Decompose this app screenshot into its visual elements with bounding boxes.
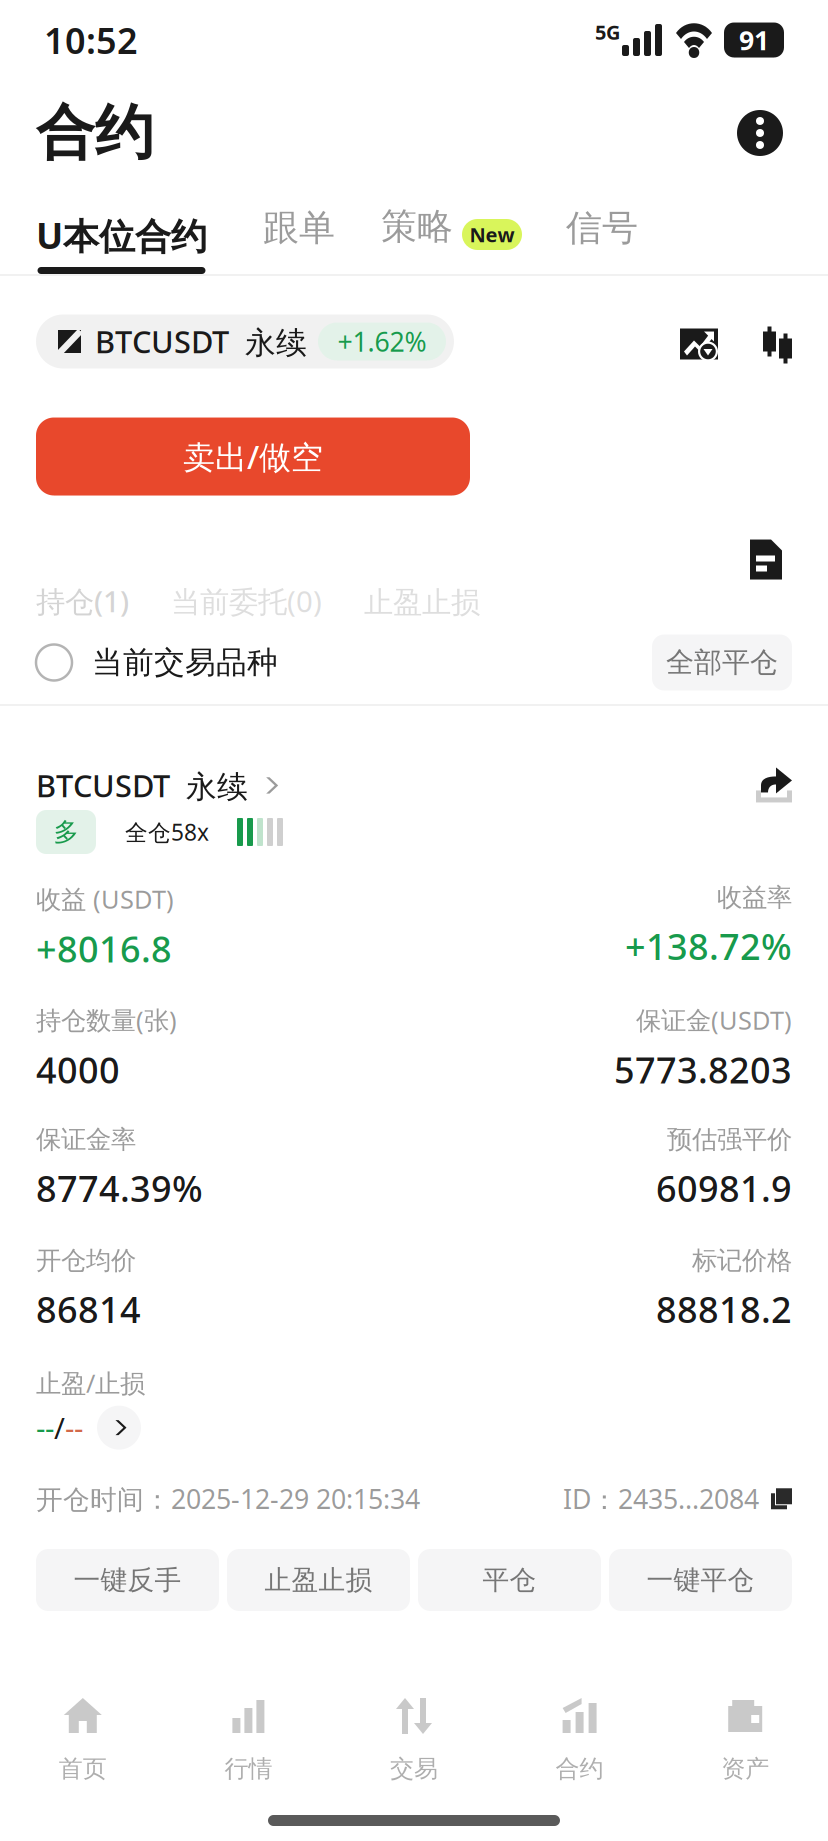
button[interactable]: 交易 xyxy=(331,1696,497,1808)
staticText: 止盈止损 xyxy=(364,584,480,620)
button[interactable]: 行情 xyxy=(166,1696,331,1808)
staticText: 平仓 xyxy=(482,1564,536,1596)
staticText: 跟单 xyxy=(263,206,335,250)
staticText: BTCUSDT 永续 xyxy=(36,765,248,806)
button[interactable]: 全部平仓 xyxy=(652,634,792,690)
button[interactable]: U本位合约 xyxy=(36,211,207,274)
button[interactable]: 策略 xyxy=(335,203,522,274)
staticText: 当前委托(0) xyxy=(171,581,322,620)
button[interactable]: Chart xyxy=(680,314,718,359)
button[interactable]: -- xyxy=(36,1406,141,1450)
staticText: 持仓数量(张) xyxy=(36,1003,177,1037)
staticText: 预估强平价 xyxy=(667,1124,792,1155)
staticText: 资产 xyxy=(721,1754,769,1783)
button[interactable]: 信号 xyxy=(522,206,638,274)
staticText: BTCUSDT 永续 xyxy=(95,321,307,362)
staticText: 10:52 xyxy=(44,16,138,64)
button[interactable]: 首页 xyxy=(0,1696,166,1808)
staticText: 止盈/止损 xyxy=(36,1366,145,1400)
staticText: 全部平仓 xyxy=(666,645,778,680)
button[interactable]: Candlesticks xyxy=(718,314,792,363)
button[interactable]: 当前委托(0) xyxy=(129,581,322,620)
button[interactable]: Copy ID xyxy=(771,1488,792,1509)
button[interactable]: 持仓(1) xyxy=(36,581,129,620)
staticText: 5773.8203 xyxy=(614,1046,792,1093)
staticText: 86814 xyxy=(36,1285,141,1333)
staticText: -- xyxy=(65,1408,83,1447)
staticText: 策略 xyxy=(381,204,453,249)
staticText: 交易 xyxy=(390,1754,438,1783)
staticText: 首页 xyxy=(59,1754,107,1783)
staticText: 一键反手 xyxy=(73,1564,181,1596)
button[interactable]: BTCUSDT 永续 xyxy=(36,765,282,806)
staticText: 止盈止损 xyxy=(264,1564,372,1596)
staticText: 保证金(USDT) xyxy=(636,1003,792,1037)
staticText: +138.72% xyxy=(625,922,792,970)
button[interactable]: 一键反手 xyxy=(36,1549,219,1611)
staticText: 合约 xyxy=(36,97,154,169)
staticText: U本位合约 xyxy=(36,211,207,259)
button[interactable]: 平仓 xyxy=(418,1549,601,1611)
staticText: 保证金率 xyxy=(36,1124,136,1155)
staticText: 收益 (USDT) xyxy=(36,882,174,916)
button[interactable]: 跟单 xyxy=(207,206,335,274)
button[interactable]: 一键平仓 xyxy=(609,1549,792,1611)
staticText: +8016.8 xyxy=(36,925,172,972)
staticText: 持仓(1) xyxy=(36,581,129,620)
staticText: 开仓时间：2025-12-29 20:15:34 xyxy=(36,1481,420,1516)
staticText: 5G xyxy=(595,19,620,45)
staticText: 标记价格 xyxy=(692,1245,792,1276)
button[interactable]: 合约 xyxy=(497,1696,662,1808)
staticText: 8774.39% xyxy=(36,1164,203,1212)
staticText: 收益率 xyxy=(717,882,792,913)
staticText: 多 xyxy=(53,816,78,847)
staticText: +1.62% xyxy=(337,324,426,359)
staticText: 信号 xyxy=(566,206,638,250)
staticText: 60981.9 xyxy=(656,1164,792,1212)
staticText: 行情 xyxy=(224,1754,272,1783)
staticText: 卖出/做空 xyxy=(183,435,323,478)
staticText: / xyxy=(54,1408,65,1447)
staticText: 当前交易品种 xyxy=(92,644,278,681)
button[interactable]: 资产 xyxy=(662,1696,828,1808)
staticText: 88818.2 xyxy=(656,1285,792,1333)
staticText: New xyxy=(469,221,514,248)
staticText: 91 xyxy=(739,22,769,58)
button[interactable]: 止盈止损 xyxy=(322,584,480,620)
staticText: 4000 xyxy=(36,1046,120,1093)
button[interactable]: 止盈止损 xyxy=(227,1549,410,1611)
button[interactable]: 卖出/做空 xyxy=(36,417,470,495)
button[interactable]: Share xyxy=(756,766,792,804)
staticText: ID：2435...2084 xyxy=(563,1481,759,1517)
button[interactable]: 当前交易品种 xyxy=(36,644,278,681)
staticText: 一键平仓 xyxy=(646,1564,754,1596)
staticText: 开仓均价 xyxy=(36,1245,136,1276)
staticText: -- xyxy=(36,1408,54,1447)
button[interactable]: More xyxy=(728,101,792,165)
button[interactable]: Order book xyxy=(750,417,792,579)
staticText: 全仓58x xyxy=(125,817,209,847)
button[interactable]: BTCUSDT 永续 xyxy=(36,314,454,368)
staticText: 合约 xyxy=(556,1754,604,1783)
